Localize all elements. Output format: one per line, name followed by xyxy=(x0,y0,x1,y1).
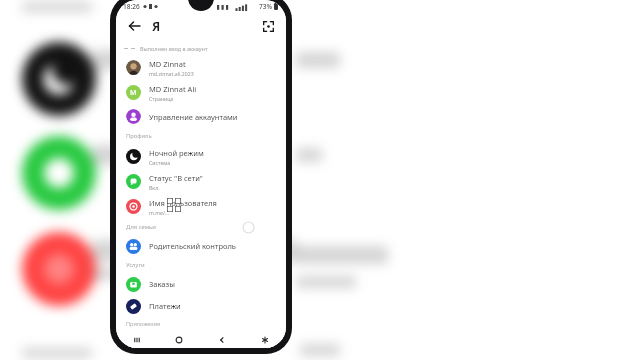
button[interactable]: Платежи xyxy=(116,295,286,317)
staticText: Вкл. xyxy=(149,184,160,191)
staticText: 18:26 xyxy=(123,2,140,11)
button[interactable]: Back xyxy=(200,332,243,348)
staticText: Платежи xyxy=(149,301,181,311)
staticText: MD Zinnat Ali xyxy=(149,84,197,94)
staticText: Система xyxy=(149,159,171,166)
button[interactable]: Управление аккаунтами xyxy=(116,105,286,128)
staticText: Родительский контроль xyxy=(149,241,236,251)
button[interactable]: M xyxy=(116,80,286,105)
staticText: Статус "В сети" xyxy=(149,173,203,183)
staticText: md.zinnat.ali.2023 xyxy=(149,70,194,77)
staticText: Заказы xyxy=(149,279,175,289)
button[interactable]: MD Zinnat xyxy=(116,55,286,80)
button[interactable]: Заказы xyxy=(116,273,286,295)
button[interactable]: Статус "В сети" xyxy=(116,169,286,194)
button[interactable]: Recents xyxy=(116,332,158,348)
staticText: Услуги xyxy=(126,261,145,269)
staticText: MD Zinnat xyxy=(149,59,186,69)
staticText: 73% xyxy=(259,2,272,11)
button[interactable]: Back xyxy=(124,16,144,36)
staticText: Я xyxy=(152,18,161,34)
button[interactable]: Accessibility xyxy=(243,332,286,348)
staticText: Страница xyxy=(149,95,174,102)
button[interactable]: Scan QR code xyxy=(258,16,278,36)
staticText: Имя пользователя xyxy=(149,198,217,208)
staticText: Выполнен вход в аккаунт xyxy=(140,45,208,52)
staticText: m.me/... xyxy=(149,209,170,216)
button[interactable]: Имя пользователя xyxy=(116,194,286,219)
staticText: M xyxy=(130,88,137,98)
button[interactable]: Ночной режим xyxy=(116,144,286,169)
staticText: Профиль xyxy=(126,132,152,140)
staticText: Ночной режим xyxy=(149,148,204,158)
button[interactable]: Родительский контроль xyxy=(116,235,286,257)
button[interactable]: Home xyxy=(158,332,200,348)
staticText: Приложения xyxy=(126,320,161,327)
staticText: Управление аккаунтами xyxy=(149,112,238,122)
staticText: Для семьи xyxy=(126,223,156,231)
